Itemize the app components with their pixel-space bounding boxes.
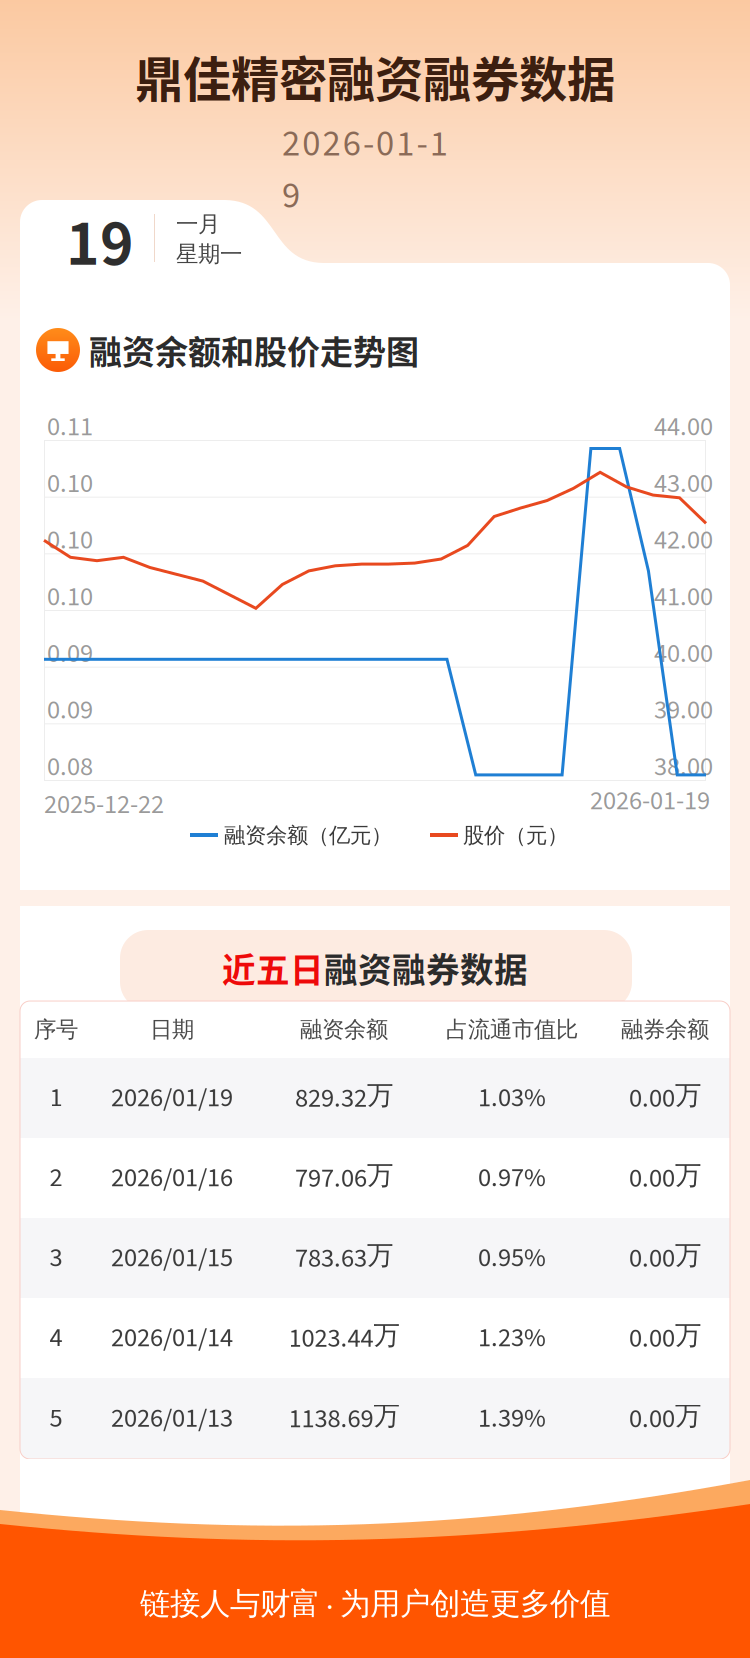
- staticText: 星期一: [176, 240, 242, 268]
- staticText: 38.00: [654, 748, 713, 786]
- staticText: 鼎佳精密融资融券数据: [135, 41, 615, 111]
- staticText: 2026/01/13: [111, 1400, 233, 1437]
- staticText: 链接人与财富 · 为用户创造更多价值: [140, 1585, 610, 1629]
- staticText: 1.03%: [478, 1079, 546, 1117]
- staticText: 0.08: [47, 748, 93, 786]
- staticText: 1.23%: [478, 1319, 546, 1357]
- staticText: 0.95%: [478, 1239, 546, 1277]
- staticText: 0.11: [47, 408, 93, 446]
- staticText: 序号: [34, 1015, 78, 1044]
- staticText: 融资余额（亿元）: [224, 822, 392, 849]
- staticText: 2026/01/15: [111, 1239, 233, 1277]
- staticText: 0.09: [47, 635, 93, 672]
- staticText: 0.00万: [629, 1239, 701, 1277]
- staticText: 3: [49, 1239, 62, 1277]
- staticText: 融券余额: [621, 1015, 709, 1044]
- staticText: 2026/01/16: [111, 1159, 233, 1197]
- staticText: 0.00万: [629, 1079, 701, 1117]
- staticText: 19: [66, 199, 134, 281]
- staticText: 783.63万: [295, 1239, 393, 1277]
- staticText: 2026/01/19: [111, 1079, 233, 1117]
- staticText: 2026-01-19: [282, 118, 468, 170]
- staticText: 2026/01/14: [111, 1319, 233, 1357]
- staticText: 0.00万: [629, 1399, 701, 1438]
- staticText: 1023.44万: [288, 1319, 399, 1357]
- staticText: 42.00: [654, 521, 713, 559]
- staticText: 5: [49, 1400, 62, 1437]
- staticText: 2026-01-19: [590, 782, 710, 820]
- staticText: 43.00: [654, 465, 713, 502]
- staticText: 0.10: [47, 465, 93, 502]
- staticText: 1: [49, 1079, 62, 1117]
- staticText: 797.06万: [295, 1159, 393, 1197]
- staticText: 0.09: [47, 691, 93, 729]
- staticText: 39.00: [654, 691, 713, 729]
- staticText: 1.39%: [478, 1400, 546, 1437]
- staticText: 40.00: [654, 635, 713, 672]
- staticText: 股价（元）: [463, 822, 568, 849]
- staticText: 41.00: [654, 578, 713, 616]
- staticText: 0.10: [47, 521, 93, 559]
- staticText: 近五日: [222, 944, 324, 992]
- staticText: 融资余额和股价走势图: [89, 326, 419, 374]
- staticText: 一月: [176, 210, 220, 238]
- staticText: 融资余额: [300, 1015, 388, 1044]
- staticText: 占流通市值比: [446, 1015, 578, 1044]
- staticText: 融资融券数据: [324, 944, 528, 992]
- staticText: 2: [49, 1159, 62, 1197]
- staticText: 829.32万: [295, 1079, 393, 1117]
- staticText: 4: [49, 1319, 62, 1357]
- staticText: 1138.69万: [288, 1399, 399, 1438]
- staticText: 0.10: [47, 578, 93, 616]
- staticText: 2025-12-22: [44, 786, 164, 824]
- staticText: 0.97%: [478, 1159, 546, 1197]
- staticText: 0.00万: [629, 1159, 701, 1197]
- staticText: 44.00: [654, 408, 713, 446]
- staticText: 0.00万: [629, 1319, 701, 1357]
- staticText: 日期: [150, 1015, 194, 1044]
